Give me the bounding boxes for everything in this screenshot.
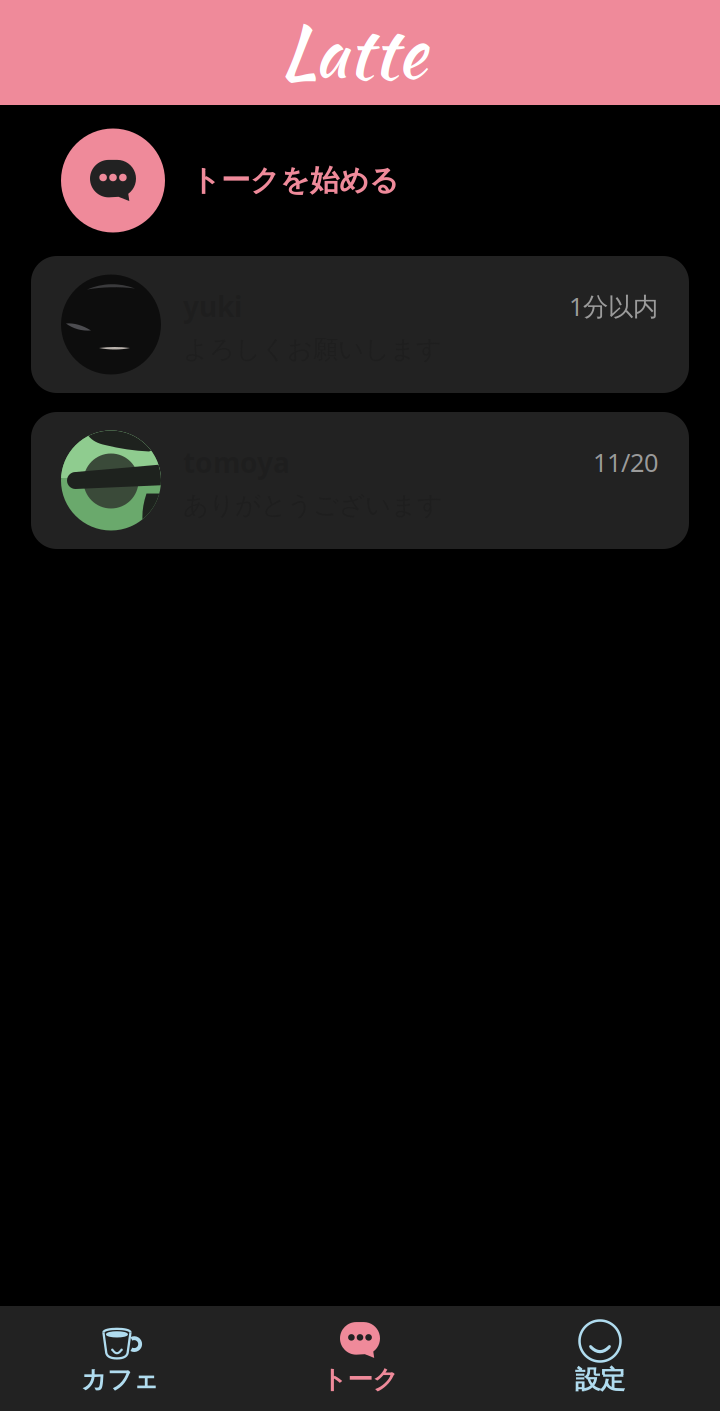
button[interactable]: トークを始める	[0, 105, 720, 256]
button[interactable]: yuki	[31, 256, 689, 393]
staticText: 11/20	[593, 445, 658, 479]
button[interactable]: カフェ	[0, 1306, 240, 1411]
staticText: 設定	[575, 1364, 625, 1395]
button[interactable]: tomoya	[31, 412, 689, 549]
staticText: カフェ	[81, 1364, 159, 1395]
staticText: トークを始める	[191, 162, 399, 198]
button[interactable]: トーク	[240, 1306, 480, 1411]
button[interactable]: 設定	[480, 1306, 720, 1411]
staticText: トーク	[321, 1364, 398, 1395]
staticText: Latte	[280, 0, 426, 104]
staticText: 1分以内	[569, 289, 658, 323]
